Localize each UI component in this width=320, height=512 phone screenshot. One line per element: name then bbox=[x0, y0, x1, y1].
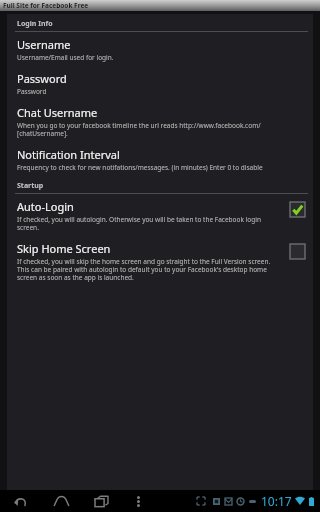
staticText: When you go to your facebook timeline th… bbox=[17, 121, 303, 138]
button[interactable]: Notification Interval bbox=[7, 142, 313, 176]
staticText: 10:17 bbox=[261, 493, 292, 509]
staticText: Password bbox=[17, 87, 47, 96]
staticText: Login Info bbox=[17, 19, 53, 29]
other: Auto-Login checked bbox=[290, 202, 305, 217]
staticText: If checked, you will autologin. Otherwis… bbox=[17, 215, 284, 232]
other: Skip Home Screen unchecked bbox=[290, 244, 305, 259]
button[interactable]: Skip Home Screen bbox=[7, 236, 313, 286]
button[interactable]: More options bbox=[128, 491, 148, 511]
staticText: Frequency to check for new notifations/m… bbox=[17, 163, 263, 172]
staticText: Skip Home Screen bbox=[17, 241, 111, 256]
staticText: Username bbox=[17, 37, 71, 52]
other: Wi-Fi bbox=[295, 495, 305, 507]
staticText: Notification Interval bbox=[17, 147, 120, 162]
button[interactable]: Username bbox=[7, 32, 313, 66]
button[interactable]: Back bbox=[8, 491, 34, 511]
staticText: Startup bbox=[17, 181, 44, 191]
other: Battery bbox=[307, 495, 315, 507]
button[interactable]: Password bbox=[7, 66, 313, 100]
staticText: Username/Email used for login. bbox=[17, 53, 114, 62]
button[interactable]: Chat Username bbox=[7, 100, 313, 142]
staticText: If checked, you will skip the home scree… bbox=[17, 257, 284, 282]
button[interactable]: Expand screenshot bbox=[193, 492, 209, 510]
staticText: Full Site for Facebook Free bbox=[3, 1, 89, 10]
button[interactable]: Home bbox=[48, 491, 74, 511]
staticText: Password bbox=[17, 71, 67, 86]
button[interactable]: Recents bbox=[88, 491, 114, 511]
button[interactable]: Auto-Login bbox=[7, 194, 313, 236]
staticText: Auto-Login bbox=[17, 199, 74, 214]
staticText: Chat Username bbox=[17, 105, 98, 120]
